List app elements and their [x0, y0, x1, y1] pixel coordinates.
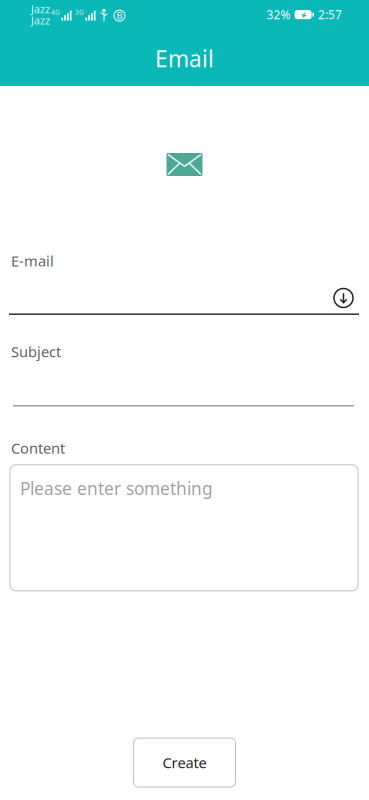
button[interactable]: Subject: [0, 342, 369, 406]
staticText: Please enter something: [20, 477, 213, 500]
staticText: Jazz: [31, 2, 50, 16]
staticText: 4G: [51, 8, 60, 17]
staticText: Content: [11, 438, 65, 458]
staticText: 32%: [267, 7, 291, 23]
staticText: B: [116, 9, 122, 22]
button[interactable]: Choose e-mail address: [334, 288, 353, 307]
staticText: E-mail: [11, 251, 54, 270]
staticText: Jazz: [31, 13, 50, 27]
button[interactable]: Please enter something: [10, 465, 358, 591]
staticText: 3G: [75, 8, 84, 17]
staticText: Subject: [11, 342, 61, 361]
button[interactable]: E-mail: [0, 251, 369, 315]
staticText: 2:57: [318, 7, 342, 23]
button[interactable]: Create: [133, 738, 235, 787]
staticText: Email: [155, 43, 214, 73]
staticText: Create: [162, 753, 206, 772]
